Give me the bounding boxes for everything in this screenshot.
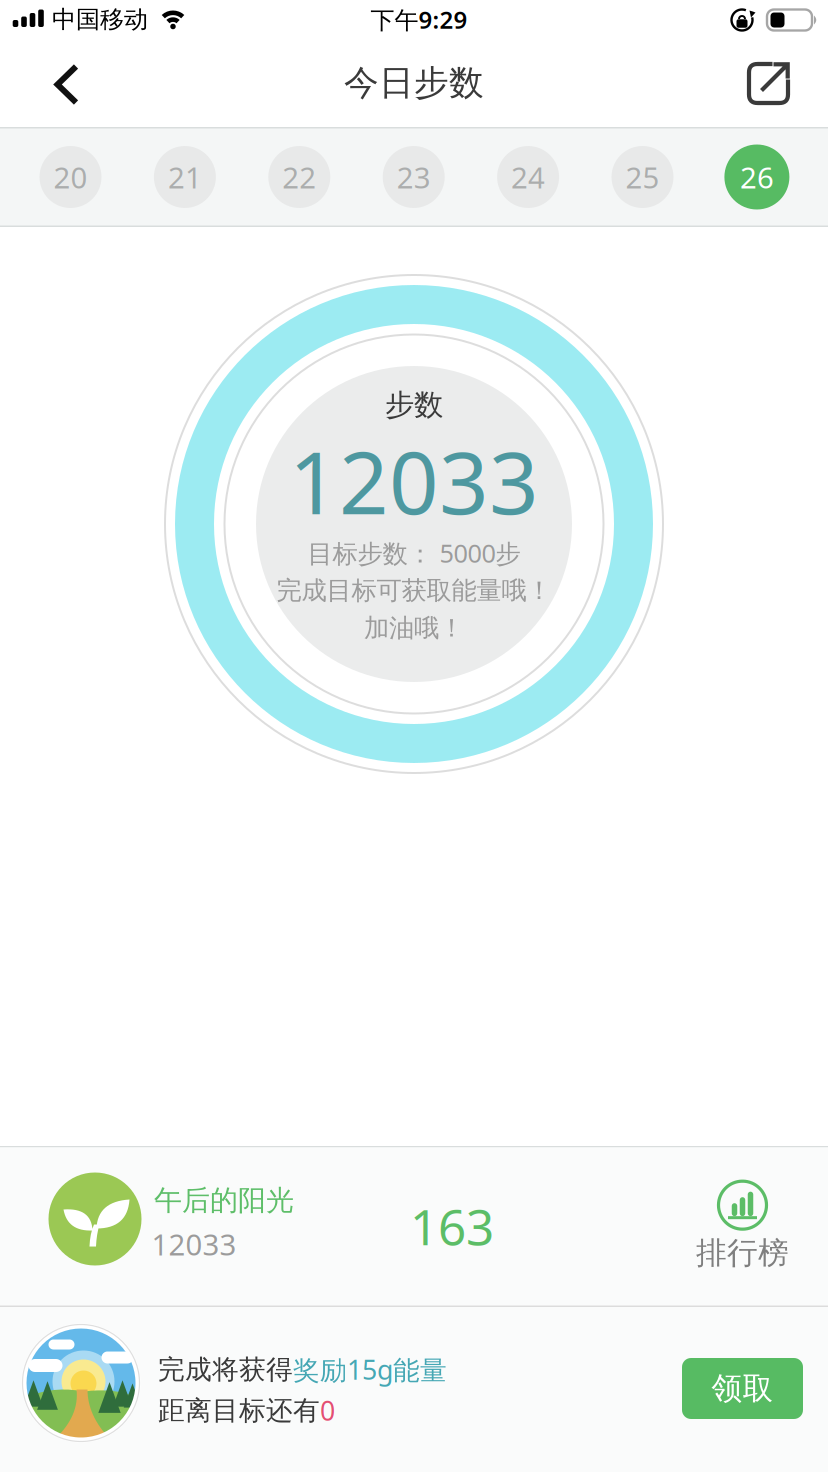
button[interactable]: Share bbox=[744, 59, 792, 107]
staticText: 午后的阳光 bbox=[154, 1183, 294, 1218]
staticText: 目标步数： 5000步 bbox=[307, 536, 520, 570]
staticText: 奖励15g能量 bbox=[293, 1352, 447, 1387]
staticText: 163 bbox=[410, 1193, 494, 1259]
button[interactable]: 领取 bbox=[682, 1358, 803, 1419]
staticText: 完成将获得 bbox=[158, 1353, 293, 1386]
button[interactable]: 24 bbox=[495, 144, 561, 210]
staticText: 12033 bbox=[151, 1224, 236, 1263]
staticText: 24 bbox=[511, 157, 545, 196]
staticText: 下午9:29 bbox=[370, 4, 467, 35]
staticText: 22 bbox=[282, 157, 316, 196]
button[interactable]: 20 bbox=[37, 144, 103, 210]
button[interactable]: 21 bbox=[152, 144, 218, 210]
button[interactable]: Back bbox=[44, 59, 88, 109]
staticText: 完成目标可获取能量哦！ bbox=[276, 575, 551, 606]
staticText: 0 bbox=[320, 1393, 335, 1428]
staticText: 12033 bbox=[289, 423, 539, 538]
button[interactable]: 22 bbox=[266, 144, 332, 210]
staticText: 距离目标还有 bbox=[158, 1394, 320, 1427]
button[interactable]: 23 bbox=[381, 144, 447, 210]
staticText: 20 bbox=[53, 157, 87, 196]
staticText: 26 bbox=[740, 157, 774, 196]
staticText: 25 bbox=[625, 157, 659, 196]
staticText: 步数 bbox=[385, 387, 443, 423]
staticText: 23 bbox=[397, 157, 431, 196]
staticText: 21 bbox=[168, 157, 202, 196]
staticText: 排行榜 bbox=[696, 1234, 789, 1272]
staticText: 领取 bbox=[711, 1370, 773, 1407]
button[interactable]: 26 bbox=[724, 144, 790, 210]
button[interactable]: 25 bbox=[609, 144, 675, 210]
staticText: 加油哦！ bbox=[364, 612, 464, 643]
staticText: 中国移动 bbox=[52, 5, 148, 34]
button[interactable]: 排行榜 bbox=[696, 1181, 789, 1272]
staticText: 今日步数 bbox=[344, 62, 484, 104]
